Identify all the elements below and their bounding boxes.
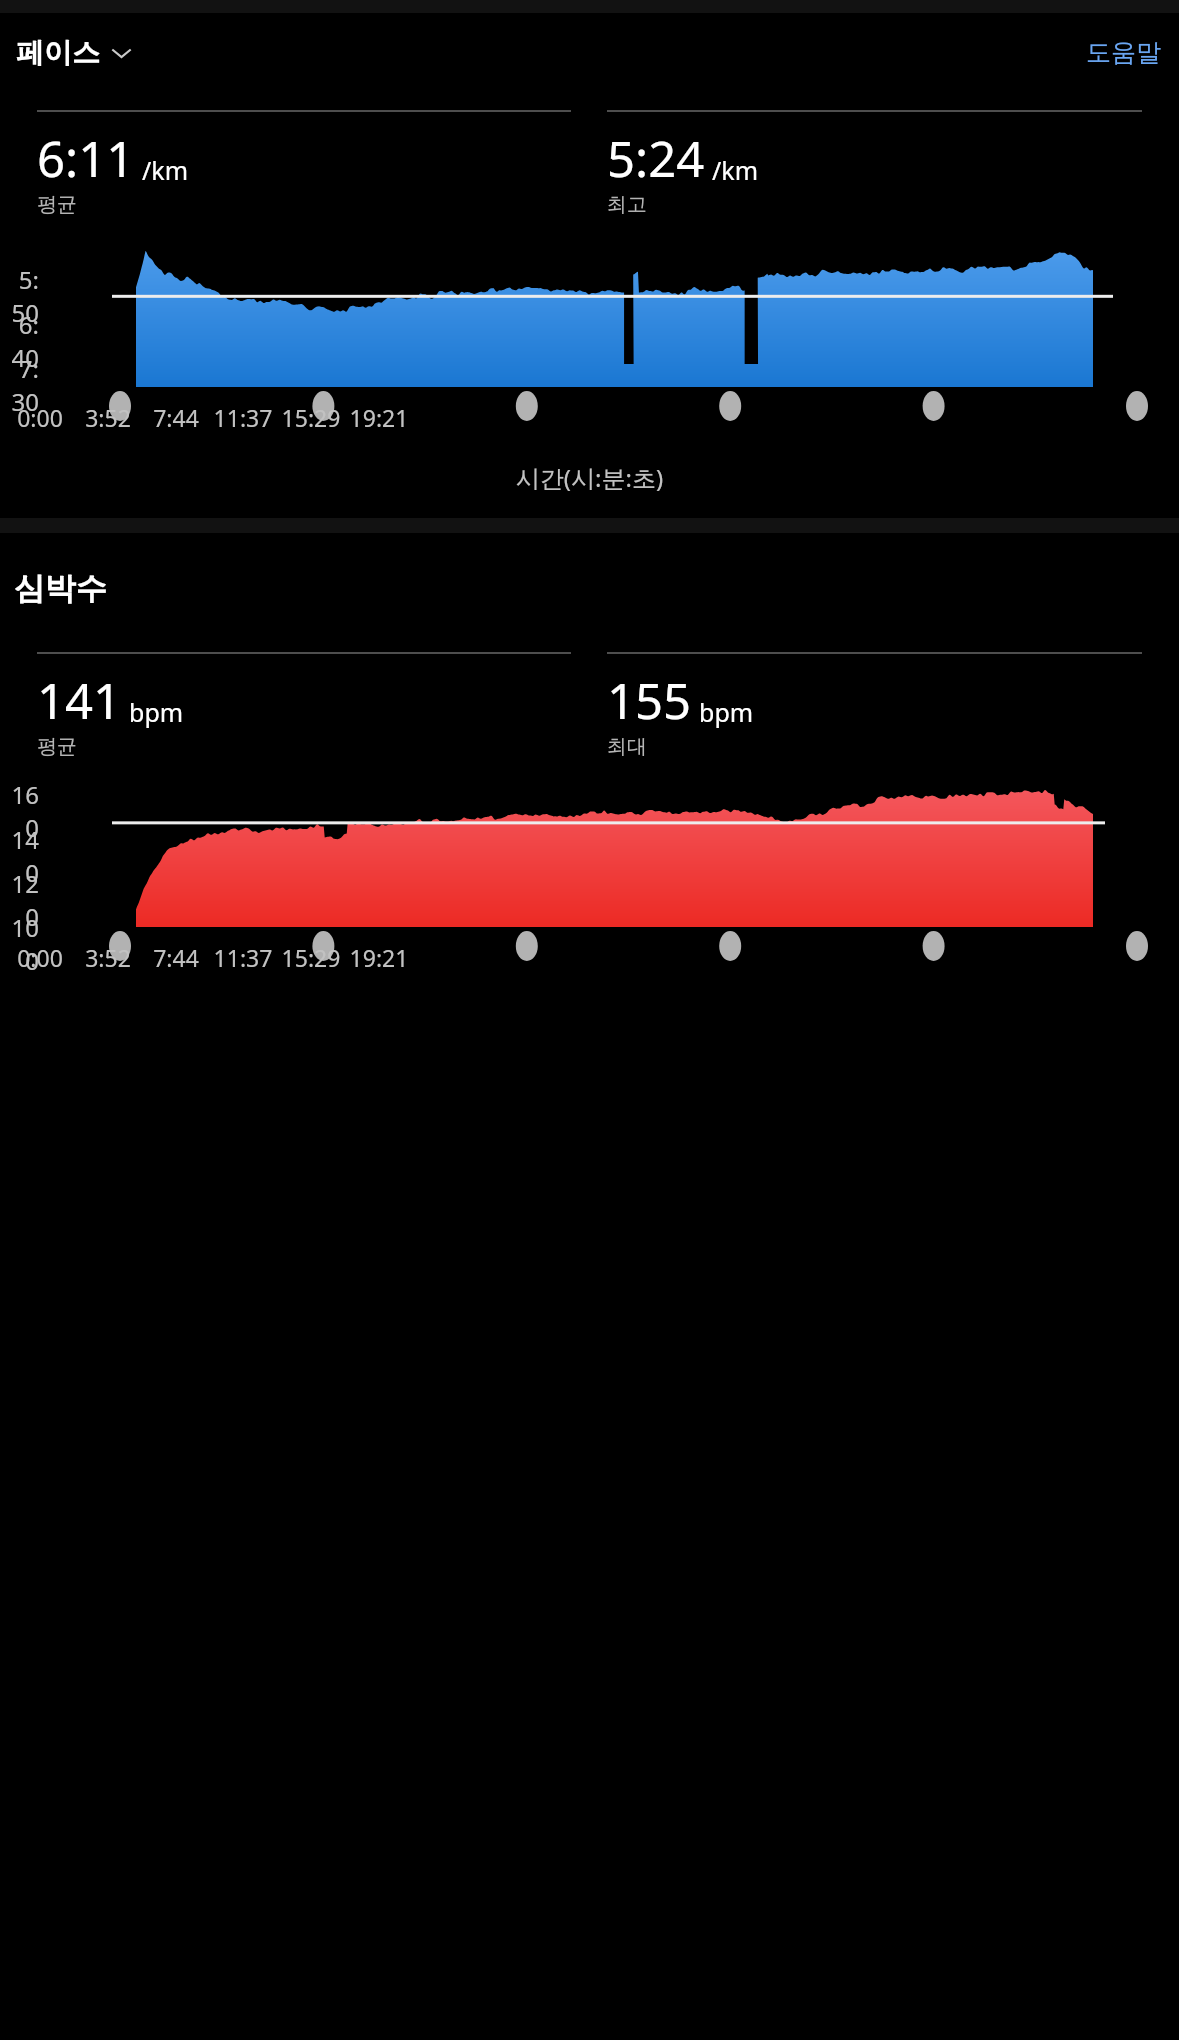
staticText: 페이스 xyxy=(16,35,100,70)
staticText: 11:37 xyxy=(213,942,273,973)
button[interactable]: 페이스 xyxy=(14,29,135,76)
staticText: 120 xyxy=(8,867,39,933)
staticText: 11:37 xyxy=(213,402,273,433)
button[interactable]: 도움말 xyxy=(1080,31,1167,74)
staticText: 최고 xyxy=(607,192,647,217)
staticText: 160 xyxy=(8,778,39,844)
staticText: bpm xyxy=(699,695,754,729)
staticText: 155 xyxy=(607,667,692,734)
staticText: 19:21 xyxy=(349,402,409,433)
staticText: 0:00 xyxy=(10,942,70,973)
staticText: 140 xyxy=(8,823,39,889)
staticText: 7:44 xyxy=(146,402,206,433)
staticText: 심박수 xyxy=(14,569,107,608)
other: Change metric xyxy=(110,41,133,64)
staticText: 6:40 xyxy=(8,308,39,374)
staticText: 도움말 xyxy=(1086,37,1161,68)
staticText: 시간(시:분:초) xyxy=(0,461,1179,494)
staticText: /km xyxy=(142,153,189,187)
staticText: 7:30 xyxy=(8,352,39,418)
staticText: 7:44 xyxy=(146,942,206,973)
staticText: 19:21 xyxy=(349,942,409,973)
staticText: 15:29 xyxy=(281,402,341,433)
staticText: bpm xyxy=(129,695,184,729)
staticText: 5:24 xyxy=(607,125,705,192)
staticText: 141 xyxy=(37,667,122,734)
staticText: 3:52 xyxy=(78,942,138,973)
staticText: 3:52 xyxy=(78,402,138,433)
staticText: 최대 xyxy=(607,734,647,759)
staticText: 15:29 xyxy=(281,942,341,973)
staticText: 5:50 xyxy=(8,263,39,329)
staticText: 평균 xyxy=(37,734,77,759)
staticText: /km xyxy=(712,153,759,187)
staticText: 0:00 xyxy=(10,402,70,433)
staticText: 평균 xyxy=(37,192,77,217)
staticText: 6:11 xyxy=(37,125,135,192)
staticText: 100 xyxy=(8,911,39,977)
